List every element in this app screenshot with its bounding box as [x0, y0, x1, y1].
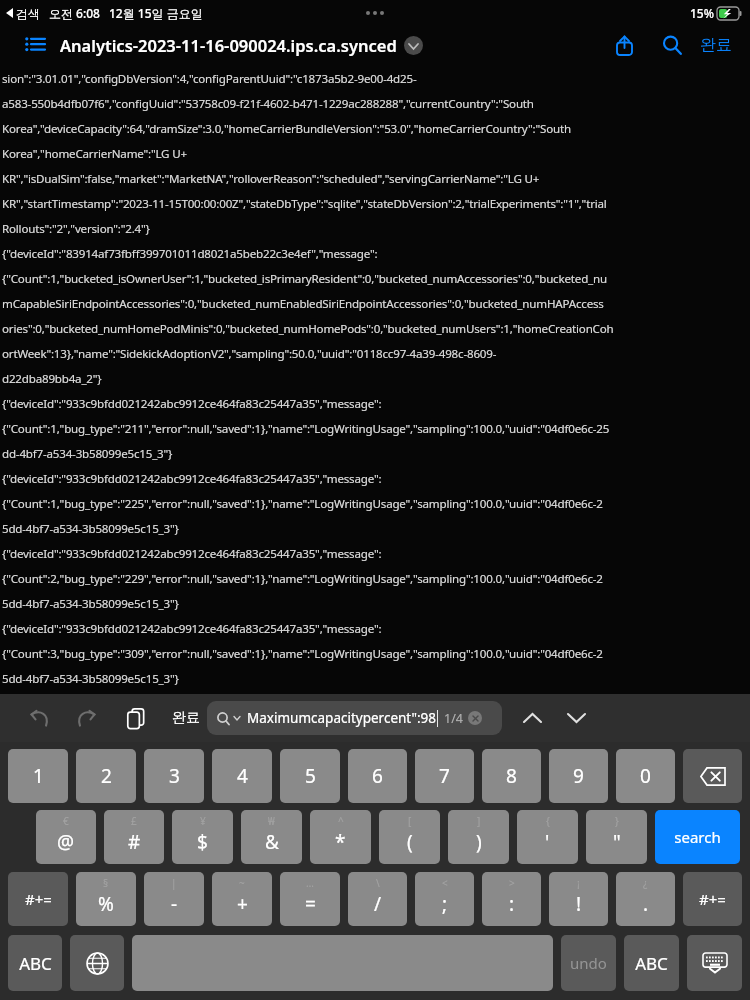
staticText: #+= — [25, 889, 52, 909]
staticText: ] — [477, 814, 481, 828]
button[interactable]: ~ — [212, 872, 272, 926]
staticText: % — [98, 891, 114, 917]
button[interactable]: Redo — [66, 697, 108, 739]
button[interactable]: § — [76, 872, 136, 926]
button[interactable]: ] — [448, 810, 509, 864]
staticText: ; — [442, 891, 448, 917]
button[interactable]: 0 — [616, 749, 675, 803]
button[interactable]: > — [482, 872, 541, 926]
button[interactable]: € — [36, 810, 96, 864]
button[interactable]: Change language — [70, 935, 124, 991]
button[interactable]: 완료 — [166, 703, 206, 733]
button[interactable]: … — [280, 872, 340, 926]
staticText: {"deviceId":"83914af73fbff399701011d8021… — [2, 246, 378, 262]
staticText: {"Count":1,"bug_type":"225","error":null… — [2, 496, 603, 512]
staticText: ' — [545, 829, 550, 855]
button[interactable]: 4 — [212, 749, 272, 803]
staticText: § — [103, 876, 109, 890]
staticText: 12월 15일 금요일 — [109, 5, 203, 21]
staticText: mCapableSiriEndpointAccessories":0,"buck… — [2, 296, 604, 312]
button[interactable]: 9 — [549, 749, 608, 803]
staticText: { — [546, 814, 550, 828]
staticText: * — [335, 829, 346, 855]
staticText: ¿ — [643, 876, 648, 890]
staticText: Rollouts":"2","version":"2.4"} — [2, 221, 150, 237]
staticText: Analytics-2023-11-16-090024.ips.ca.synce… — [60, 34, 397, 56]
button[interactable]: #+= — [683, 872, 742, 926]
staticText: 검색 — [16, 6, 40, 21]
staticText: search — [674, 827, 721, 847]
staticText: ¡ — [577, 876, 580, 890]
staticText: 완료 — [172, 709, 200, 727]
button[interactable]: ¥ — [172, 810, 233, 864]
button[interactable]: 완료 — [694, 29, 738, 61]
button[interactable]: 6 — [348, 749, 407, 803]
staticText: ABC — [635, 952, 668, 975]
button[interactable]: £ — [104, 810, 164, 864]
button[interactable]: Search — [652, 25, 692, 65]
staticText: ories":0,"bucketed_numHomePodMinis":0,"b… — [2, 321, 614, 337]
staticText: ¥ — [200, 814, 206, 828]
button[interactable]: Paste — [114, 697, 156, 739]
button[interactable]: Delete — [683, 749, 742, 803]
button[interactable]: ¡ — [549, 872, 608, 926]
staticText: {"deviceId":"933c9bfdd021242abc9912ce464… — [2, 546, 382, 562]
staticText: ortWeek":13},"name":"SidekickAdoptionV2"… — [2, 346, 497, 362]
button[interactable]: Maximumcapacitypercent":98 — [207, 701, 502, 735]
staticText: 6 — [372, 763, 383, 789]
button[interactable]: [ — [379, 810, 440, 864]
button[interactable]: Clear — [468, 711, 482, 725]
staticText: " — [613, 829, 621, 855]
button[interactable]: Undo — [18, 697, 60, 739]
staticText: {"Count":1,"bug_type":"211","error":null… — [2, 421, 610, 437]
button[interactable]: ^ — [310, 810, 371, 864]
button[interactable]: undo — [561, 935, 616, 991]
staticText: £ — [131, 814, 137, 828]
button[interactable]: ABC — [624, 935, 679, 991]
staticText: 오전 6:08 — [49, 5, 100, 21]
button[interactable]: \ — [348, 872, 407, 926]
button[interactable]: ₩ — [241, 810, 302, 864]
staticText: 2 — [101, 763, 112, 789]
button[interactable]: 5 — [280, 749, 340, 803]
staticText: {"deviceId":"933c9bfdd021242abc9912ce464… — [2, 471, 382, 487]
button[interactable]: #+= — [8, 872, 68, 926]
button[interactable]: search — [655, 810, 740, 864]
staticText: 7 — [439, 763, 450, 789]
button[interactable]: Hide keyboard — [687, 935, 742, 991]
button[interactable]: Share — [604, 25, 644, 65]
staticText: d22dba89bb4a_2"} — [2, 371, 102, 387]
staticText: & — [265, 829, 279, 855]
button[interactable]: 8 — [482, 749, 541, 803]
staticText: a583-550b4dfb07f6","configUuid":"53758c0… — [2, 96, 534, 112]
staticText: 3 — [169, 763, 180, 789]
button[interactable]: < — [415, 872, 474, 926]
staticText: > — [509, 876, 515, 890]
staticText: ! — [576, 891, 582, 917]
staticText: # — [128, 829, 141, 855]
button[interactable]: { — [517, 810, 578, 864]
button[interactable]: 2 — [76, 749, 136, 803]
staticText: ^ — [338, 814, 344, 828]
button[interactable]: } — [586, 810, 647, 864]
button[interactable]: Previous result — [510, 696, 554, 740]
button[interactable]: 1 — [8, 749, 68, 803]
button[interactable]: Outline — [18, 28, 52, 62]
staticText: ~ — [239, 876, 245, 890]
staticText: 5dd-4bf7-a534-3b58099e5c15_3"} — [2, 671, 179, 687]
button[interactable]: | — [144, 872, 204, 926]
button[interactable]: More options — [404, 36, 423, 55]
button[interactable]: 3 — [144, 749, 204, 803]
staticText: $ — [197, 829, 208, 855]
staticText: {"deviceId":"933c9bfdd021242abc9912ce464… — [2, 621, 382, 637]
button[interactable]: Next result — [554, 696, 598, 740]
staticText: 완료 — [700, 35, 732, 55]
staticText: 0 — [640, 763, 651, 789]
button[interactable]: 7 — [415, 749, 474, 803]
button[interactable]: ABC — [8, 935, 62, 991]
button[interactable]: ¿ — [616, 872, 675, 926]
staticText: @ — [57, 829, 75, 855]
staticText: 15% — [690, 5, 714, 21]
